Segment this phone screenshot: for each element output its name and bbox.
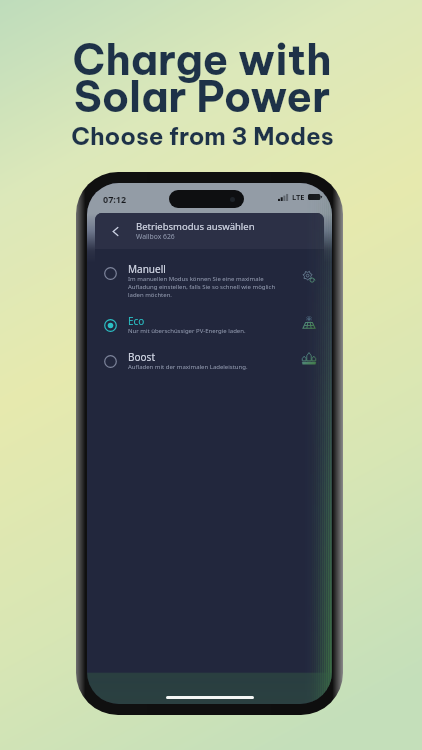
- staticText: Choose from 3 Modes: [71, 121, 334, 151]
- staticText: Nur mit überschüssiger PV-Energie laden.: [128, 327, 246, 335]
- staticText: 07:12: [103, 193, 127, 205]
- staticText: Manuell: [128, 262, 166, 276]
- staticText: Wallbox 626: [136, 232, 175, 241]
- staticText: Im manuellen Modus können Sie eine maxim…: [128, 275, 276, 299]
- staticText: LTE: [292, 192, 305, 202]
- button[interactable]: Boost: [95, 340, 324, 376]
- button[interactable]: Eco: [95, 304, 324, 340]
- staticText: Charge with Solar Power: [72, 33, 332, 123]
- staticText: Betriebsmodus auswählen: [136, 220, 255, 233]
- staticText: Eco: [128, 314, 145, 328]
- button[interactable]: Back: [95, 213, 324, 249]
- staticText: Boost: [128, 350, 155, 364]
- button[interactable]: Back: [105, 221, 125, 241]
- staticText: Aufladen mit der maximalen Ladeleistung.: [128, 363, 248, 371]
- button[interactable]: Manuell: [95, 249, 324, 304]
